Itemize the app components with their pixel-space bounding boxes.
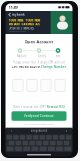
staticText: mybank xyxy=(12,13,25,16)
staticText: Verify and Continue xyxy=(24,114,54,118)
staticText: By proceeding you agree to the Terms of … xyxy=(23,124,54,125)
staticText: INSTANT SAVINGS A/C xyxy=(8,22,40,26)
staticText: Verify xyxy=(37,54,45,58)
staticText: Mobile xyxy=(17,54,27,58)
staticText: KYC xyxy=(56,54,61,58)
staticText: Didn't receive the OTP? xyxy=(13,105,46,109)
staticText: YOUR NEW, YOUR NEW xyxy=(8,19,40,22)
staticText: ZERO BALANCE ACCOUNT xyxy=(8,30,26,32)
staticText: 1 xyxy=(10,129,12,132)
staticText: Please enter the 4 digit OTP sent on xyxy=(12,61,65,64)
staticText: Open Account xyxy=(24,39,53,44)
staticText: 2 xyxy=(65,129,67,132)
button[interactable]: Verify and Continue xyxy=(11,111,66,121)
staticText: Resend (53) xyxy=(47,105,65,109)
staticText: Change Number xyxy=(41,65,66,69)
staticText: 11:49 xyxy=(8,5,17,10)
staticText: a registered xyxy=(30,129,47,132)
button[interactable]: Resend (53) xyxy=(47,105,65,109)
button[interactable]: Change Number xyxy=(41,65,66,69)
staticText: +91 98765 43210 xyxy=(12,65,40,69)
staticText: OPEN IN 3 MINUTES xyxy=(8,27,33,30)
